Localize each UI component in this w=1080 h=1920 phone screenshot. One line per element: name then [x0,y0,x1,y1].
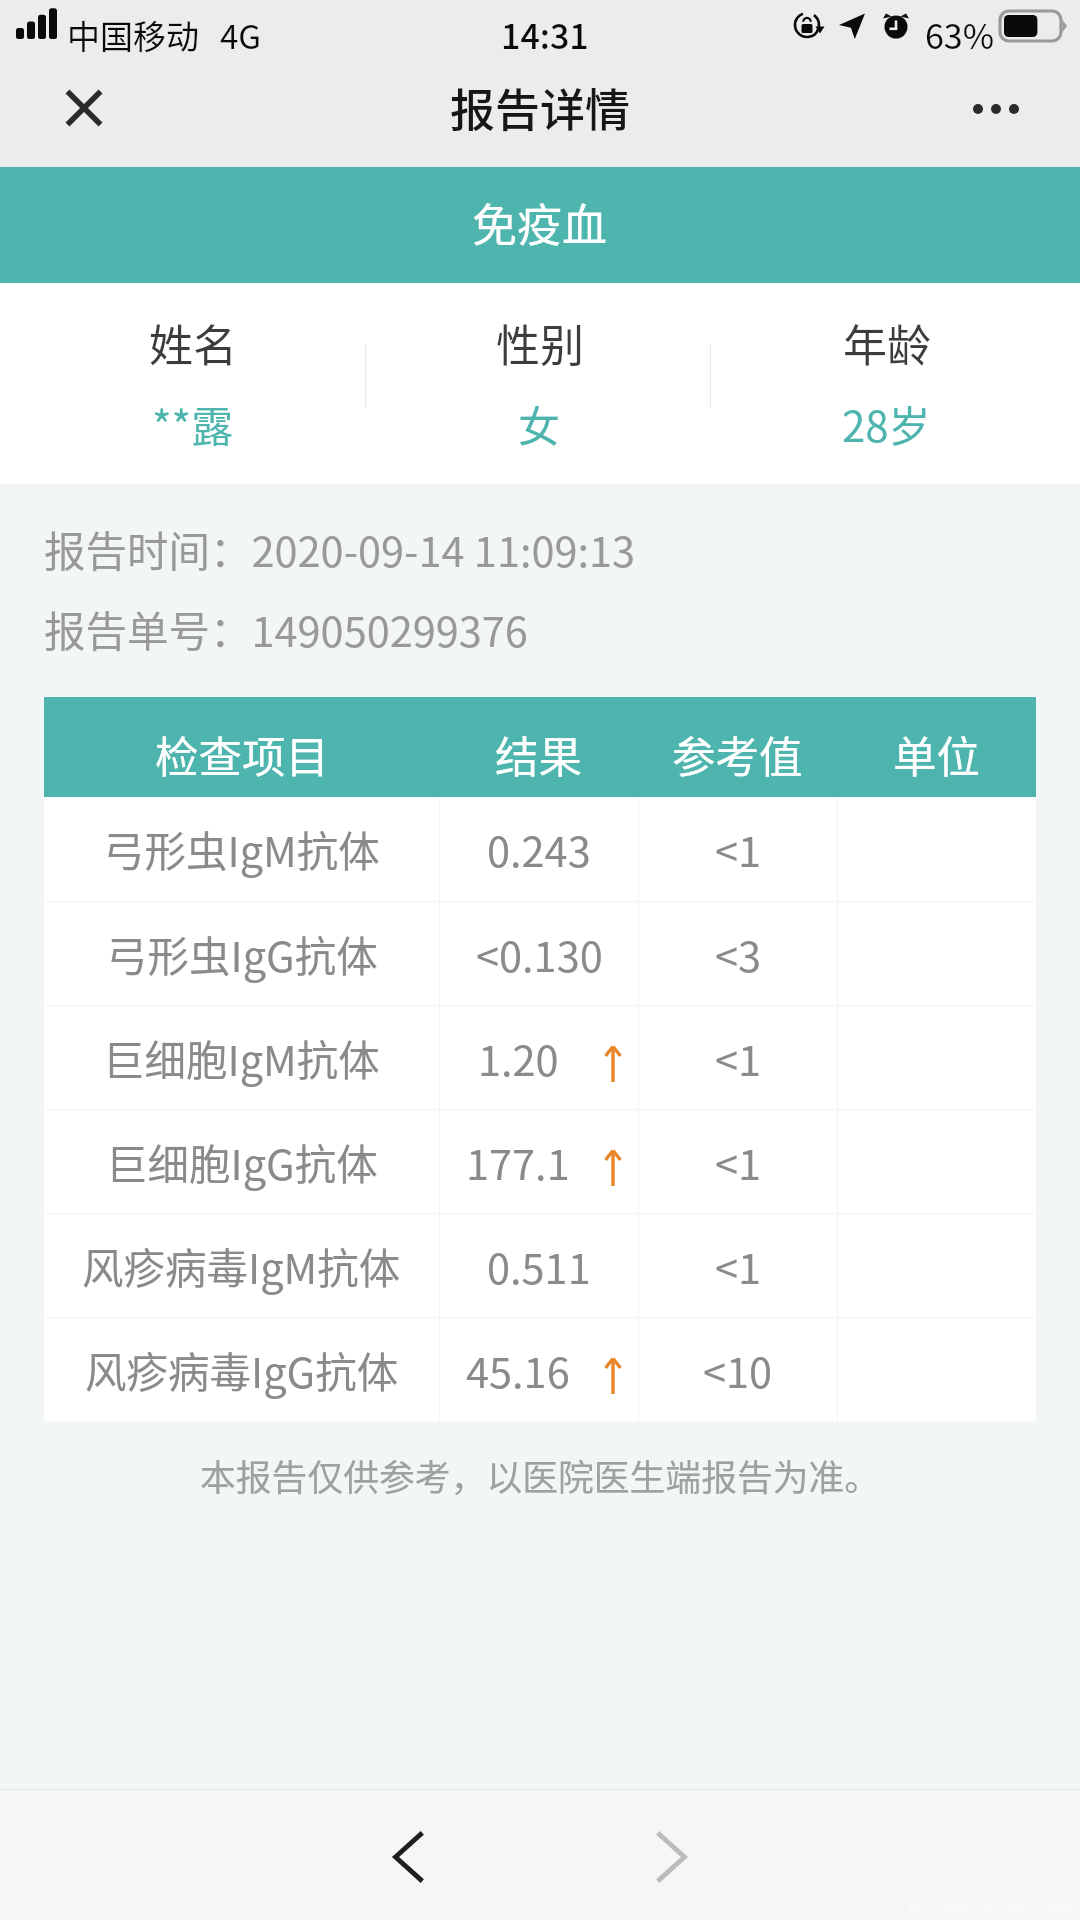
staticText: 中国移动 [67,11,199,59]
staticText: 28岁 [842,393,931,454]
staticText: 结果 [495,723,582,786]
staticText: 报告详情 [450,75,631,140]
staticText: 报告时间：2020-09-14 11:09:13 [44,519,636,579]
staticText: 姓名 [149,311,237,375]
staticText: 本报告仅供参考，以医院医生端报告为准。 [200,1449,881,1501]
button[interactable]: Back [364,1812,452,1902]
staticText: 女 [518,393,561,454]
staticText: 0.511 [487,1236,591,1296]
button[interactable]: More options [954,67,1038,151]
staticText: <1 [715,819,762,879]
staticText: <10 [703,1340,773,1400]
staticText: 报告单号：149050299376 [44,599,528,659]
staticText: 4G [220,11,262,59]
staticText: 14:31 [501,10,589,59]
staticText: 参考值 [672,723,803,786]
staticText: 弓形虫IgG抗体 [106,924,378,984]
staticText: 风疹病毒IgG抗体 [85,1340,399,1400]
button[interactable]: Close [42,66,126,150]
staticText: 巨细胞IgM抗体 [103,1028,380,1088]
staticText: 63% [925,10,995,59]
staticText: 单位 [893,723,980,786]
staticText: <1 [715,1132,762,1192]
staticText: 177.1 [466,1132,570,1192]
staticText: 弓形虫IgM抗体 [103,819,380,879]
staticText: 年龄 [843,311,931,375]
staticText: <1 [715,1236,762,1296]
staticText: 45.16 [466,1340,570,1400]
staticText: 性别 [496,311,584,375]
staticText: **露 [152,393,234,454]
staticText: 0.243 [487,819,591,879]
staticText: <1 [715,1028,762,1088]
staticText: 巨细胞IgG抗体 [106,1132,378,1192]
staticText: 1.20 [478,1028,559,1088]
staticText: 风疹病毒IgM抗体 [82,1236,401,1296]
staticText: <0.130 [476,924,603,984]
button[interactable]: Forward [628,1812,716,1902]
staticText: <3 [715,924,762,984]
staticText: 免疫血 [472,190,608,255]
staticText: 检查项目 [155,723,329,786]
